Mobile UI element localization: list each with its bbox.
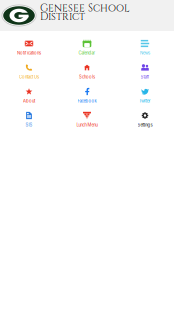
button[interactable]: Lunch Menu bbox=[58, 108, 116, 132]
button[interactable]: About bbox=[0, 84, 58, 108]
staticText: Notifications bbox=[17, 50, 41, 56]
staticText: SIS bbox=[25, 122, 32, 128]
staticText: Staff bbox=[140, 74, 149, 80]
staticText: Genesee School bbox=[40, 1, 130, 15]
button[interactable]: Facebook bbox=[58, 84, 116, 108]
staticText: Facebook bbox=[77, 98, 96, 104]
button[interactable]: Staff bbox=[116, 60, 174, 84]
button[interactable]: Contact Us bbox=[0, 60, 58, 84]
staticText: About bbox=[23, 98, 35, 104]
staticText: Schools bbox=[79, 74, 95, 80]
staticText: Settings bbox=[137, 122, 152, 128]
button[interactable]: Schools bbox=[58, 60, 116, 84]
staticText: District bbox=[40, 10, 85, 24]
button[interactable]: Calendar bbox=[58, 36, 116, 60]
staticText: Lunch Menu bbox=[76, 122, 97, 128]
staticText: Calendar bbox=[78, 50, 95, 56]
button[interactable]: Twitter bbox=[116, 84, 174, 108]
button[interactable]: SIS bbox=[0, 108, 58, 132]
button[interactable]: News bbox=[116, 36, 174, 60]
button[interactable]: Settings bbox=[116, 108, 174, 132]
button[interactable]: Notifications bbox=[0, 36, 58, 60]
staticText: News bbox=[140, 50, 150, 56]
staticText: Twitter bbox=[139, 98, 151, 104]
staticText: Contact Us bbox=[19, 74, 39, 80]
